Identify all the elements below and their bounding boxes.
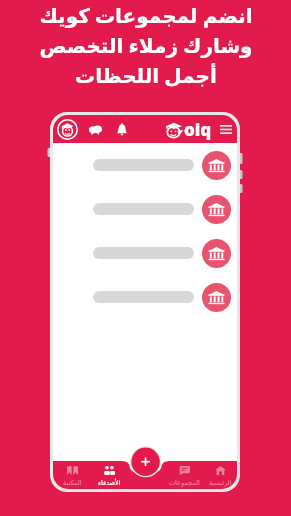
button[interactable]: Add — [130, 444, 161, 475]
button[interactable]: المجموعات — [164, 462, 204, 489]
button[interactable] — [53, 143, 237, 187]
button[interactable]: الأصدقاء — [89, 462, 129, 489]
staticText: الأصدقاء — [98, 479, 121, 487]
button[interactable]: Messages — [89, 123, 102, 136]
staticText: الرئيسية — [209, 479, 232, 487]
button[interactable] — [53, 231, 237, 275]
button[interactable]: المكتبة — [53, 462, 92, 489]
staticText: انضم لمجموعات كويك — [39, 2, 253, 29]
staticText: oiq — [184, 118, 212, 141]
button[interactable] — [53, 187, 237, 231]
staticText: المكتبة — [63, 479, 82, 487]
button[interactable]: الرئيسية — [200, 462, 237, 489]
staticText: المجموعات — [169, 479, 200, 487]
staticText: أجمل اللحظات — [75, 62, 217, 89]
button[interactable]: Notifications — [115, 123, 128, 136]
staticText: وشارك زملاء التخصص — [39, 32, 253, 59]
button[interactable] — [53, 275, 237, 319]
button[interactable]: Menu — [220, 123, 232, 135]
button[interactable]: Profile — [57, 119, 78, 140]
